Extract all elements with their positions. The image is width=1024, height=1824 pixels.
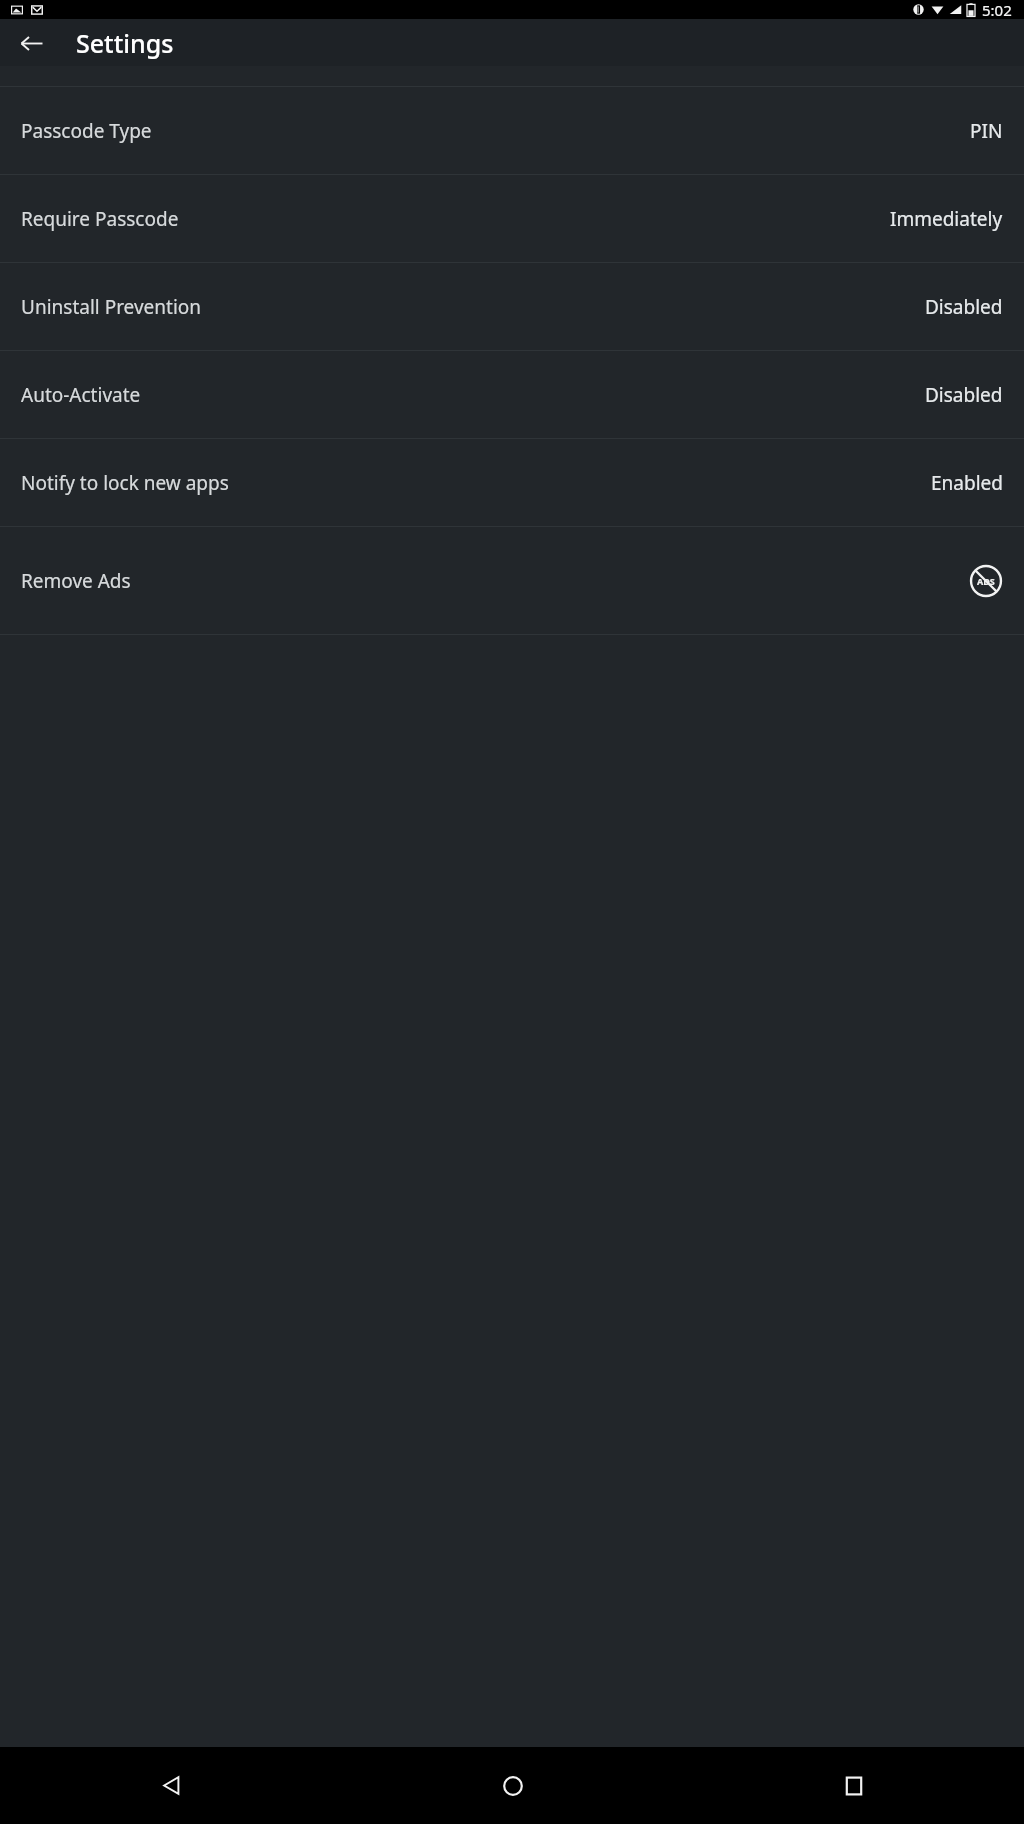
staticText: Immediately: [890, 206, 1003, 232]
staticText: Remove Ads: [21, 568, 969, 594]
button[interactable]: Back: [14, 26, 48, 60]
button[interactable]: Uninstall Prevention: [0, 263, 1024, 350]
button[interactable]: Remove Ads: [0, 527, 1024, 634]
staticText: Auto-Activate: [21, 382, 925, 408]
staticText: 5:02: [982, 0, 1012, 19]
staticText: ADS: [977, 575, 995, 587]
button[interactable]: Require Passcode: [0, 175, 1024, 262]
staticText: Require Passcode: [21, 206, 890, 232]
staticText: Settings: [76, 26, 174, 60]
button[interactable]: Back: [0, 1747, 342, 1824]
staticText: Notify to lock new apps: [21, 470, 931, 496]
button[interactable]: Recent apps: [683, 1747, 1024, 1824]
staticText: Passcode Type: [21, 118, 970, 144]
staticText: Disabled: [925, 294, 1003, 320]
staticText: Enabled: [931, 470, 1003, 496]
staticText: PIN: [970, 118, 1003, 144]
button[interactable]: Notify to lock new apps: [0, 439, 1024, 526]
other: Remove Ads: [969, 564, 1003, 598]
staticText: Disabled: [925, 382, 1003, 408]
button[interactable]: Passcode Type: [0, 87, 1024, 174]
staticText: Uninstall Prevention: [21, 294, 925, 320]
button[interactable]: Auto-Activate: [0, 351, 1024, 438]
button[interactable]: Home: [342, 1747, 683, 1824]
